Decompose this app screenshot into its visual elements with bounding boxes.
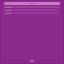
button[interactable]: Steps — [4, 6, 60, 8]
button[interactable]: Heart — [4, 9, 60, 11]
button[interactable]: Sleep — [4, 12, 60, 14]
button[interactable]: Today — [4, 2, 60, 5]
staticText: Heart — [7, 9, 11, 11]
staticText: Today — [29, 2, 35, 5]
staticText: Steps — [7, 6, 11, 8]
button[interactable]: More — [30, 60, 34, 62]
staticText: Sleep — [7, 12, 11, 14]
